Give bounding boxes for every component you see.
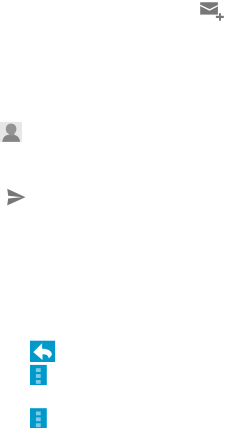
button[interactable]: New message bbox=[200, 2, 224, 21]
button[interactable]: More options bbox=[30, 408, 47, 428]
button[interactable]: Send bbox=[7, 189, 25, 205]
button[interactable]: Contact photo bbox=[0, 122, 22, 142]
button[interactable]: Reply bbox=[30, 341, 55, 362]
button[interactable]: More options bbox=[30, 365, 47, 385]
